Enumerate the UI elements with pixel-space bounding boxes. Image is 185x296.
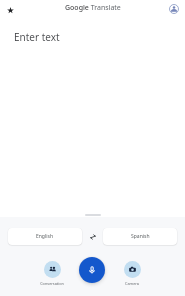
staticText: Enter text [14, 30, 60, 44]
button[interactable]: Swap languages [82, 228, 103, 245]
button[interactable]: English [8, 228, 82, 245]
staticText: Google Translate [65, 3, 121, 13]
button[interactable]: Conversation [32, 261, 72, 286]
staticText: Spanish [131, 233, 150, 240]
staticText: Camera [125, 281, 139, 286]
button[interactable]: Camera [112, 261, 152, 286]
button[interactable]: Spanish [103, 228, 177, 245]
button[interactable]: Voice input [79, 257, 105, 283]
button[interactable]: Saved translations [4, 4, 16, 16]
button[interactable]: Account [168, 3, 180, 15]
staticText: Conversation [40, 281, 64, 286]
staticText: English [36, 233, 54, 240]
